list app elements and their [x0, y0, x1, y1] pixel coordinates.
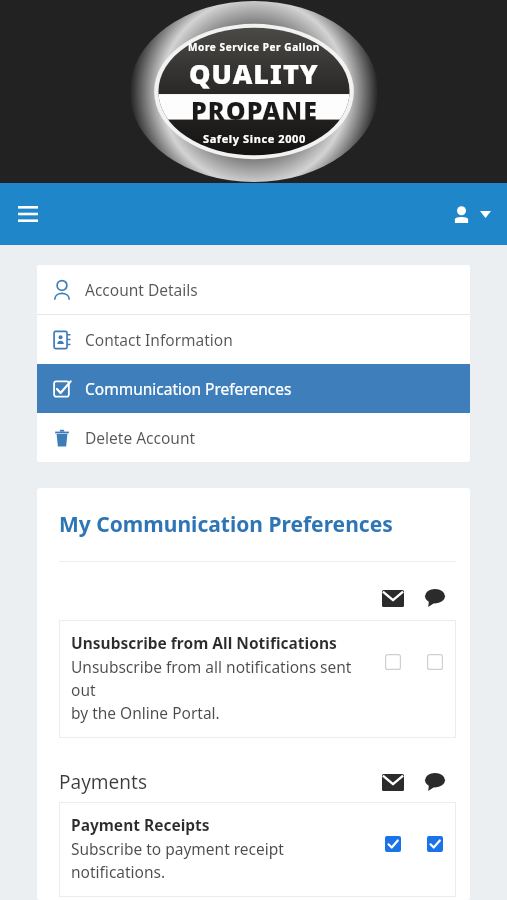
button[interactable]: Delete Account	[37, 413, 470, 462]
button[interactable]: Open navigation menu	[10, 196, 46, 232]
staticText: Payments	[59, 769, 148, 795]
staticText: Communication Preferences	[85, 378, 292, 399]
staticText: Contact Information	[85, 329, 233, 350]
staticText: Delete Account	[85, 427, 196, 448]
staticText: Account Details	[85, 279, 198, 300]
button[interactable]: Unchecked	[385, 654, 401, 670]
staticText: Safely Since 2000	[203, 131, 306, 146]
button[interactable]: Checked	[385, 836, 401, 852]
staticText: More Service Per Gallon	[188, 40, 320, 54]
button[interactable]: Account menu	[448, 198, 497, 231]
button[interactable]: Account Details	[37, 265, 470, 314]
staticText: Unsubscribe from All Notifications	[71, 632, 337, 653]
button[interactable]: Unchecked	[427, 654, 443, 670]
button[interactable]: Checked	[427, 836, 443, 852]
staticText: QUALITY	[189, 55, 319, 92]
staticText: Unsubscribe from all notifications sent …	[71, 656, 372, 724]
staticText: Payment Receipts	[71, 814, 210, 835]
button[interactable]: Communication Preferences	[37, 364, 470, 413]
button[interactable]: Contact Information	[37, 315, 470, 364]
staticText: PROPANE	[191, 93, 318, 127]
staticText: Subscribe to payment receipt notificatio…	[71, 838, 284, 883]
staticText: My Communication Preferences	[59, 510, 393, 539]
